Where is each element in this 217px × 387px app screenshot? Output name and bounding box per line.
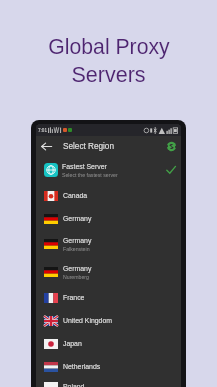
staticText: Canada bbox=[63, 192, 88, 200]
staticText: Japan bbox=[63, 340, 82, 348]
staticText: Servers bbox=[71, 63, 146, 87]
staticText: United Kingdom bbox=[63, 317, 113, 325]
staticText: Germany bbox=[63, 215, 92, 223]
button[interactable]: Back bbox=[36, 136, 56, 156]
button[interactable]: Japan bbox=[36, 332, 181, 355]
button[interactable]: Fastest Server bbox=[36, 156, 181, 184]
button[interactable]: Germany bbox=[36, 230, 181, 258]
staticText: Germany bbox=[63, 237, 92, 245]
staticText: Select the fastest server bbox=[62, 172, 118, 178]
staticText: Netherlands bbox=[63, 363, 101, 371]
staticText: Global Proxy bbox=[48, 35, 170, 59]
staticText: Select Region bbox=[63, 142, 114, 151]
button[interactable]: Poland bbox=[36, 378, 181, 387]
button[interactable]: Netherlands bbox=[36, 355, 181, 378]
button[interactable]: Germany bbox=[36, 207, 181, 230]
staticText: France bbox=[63, 294, 85, 302]
staticText: Fastest Server bbox=[62, 163, 107, 171]
button[interactable]: United Kingdom bbox=[36, 309, 181, 332]
button[interactable]: France bbox=[36, 286, 181, 309]
staticText: Poland bbox=[63, 383, 85, 387]
staticText: Nuremberg bbox=[63, 274, 89, 280]
staticText: Germany bbox=[63, 265, 92, 273]
button[interactable]: Germany bbox=[36, 258, 181, 286]
staticText: 7:01 bbox=[38, 128, 47, 133]
staticText: Falkenstein bbox=[63, 246, 90, 252]
button[interactable]: Canada bbox=[36, 184, 181, 207]
button[interactable]: Refresh bbox=[161, 136, 181, 156]
